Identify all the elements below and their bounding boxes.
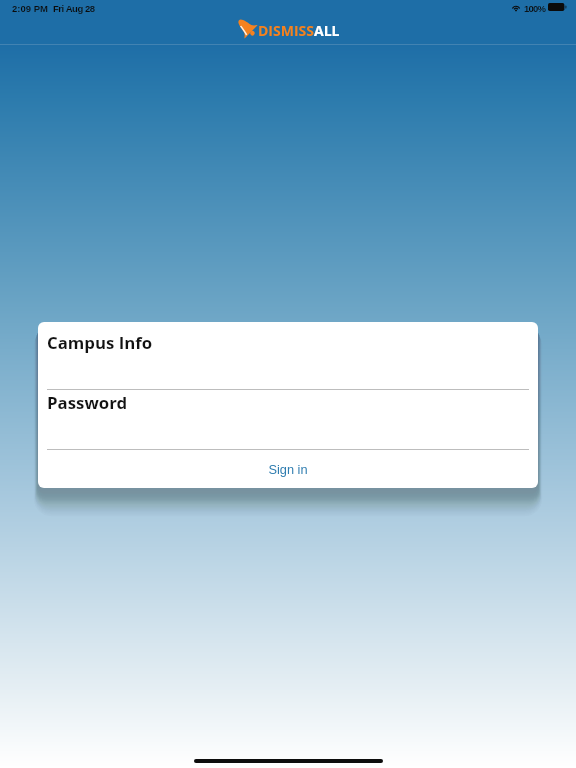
staticText: Password xyxy=(47,391,128,414)
staticText: 100% xyxy=(524,3,546,14)
staticText: DISMISS xyxy=(258,21,314,40)
staticText: 2:09 PM xyxy=(12,3,48,14)
button[interactable]: Sign in xyxy=(38,450,538,488)
staticText: Campus Info xyxy=(47,331,153,354)
staticText: Fri Aug 28 xyxy=(53,3,95,14)
staticText: Sign in xyxy=(268,462,308,476)
staticText: ALL xyxy=(314,21,340,40)
